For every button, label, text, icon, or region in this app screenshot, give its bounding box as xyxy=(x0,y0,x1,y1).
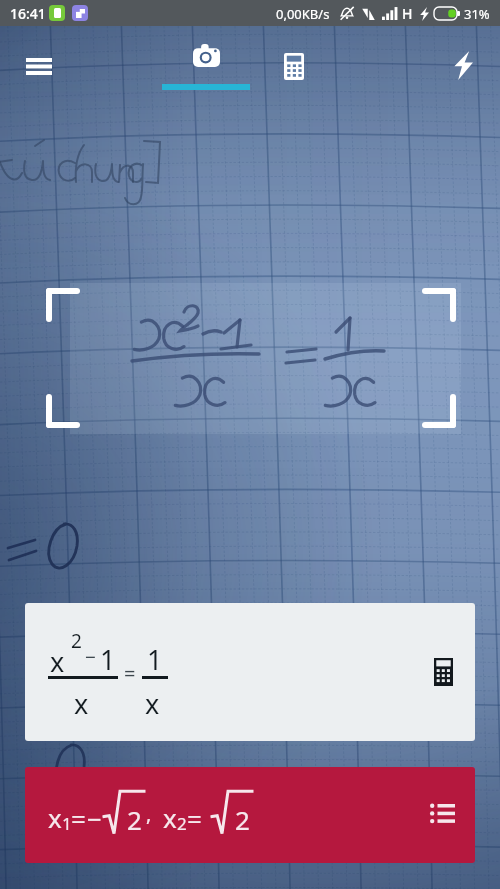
staticText: x xyxy=(163,800,177,835)
button[interactable]: x xyxy=(25,767,475,863)
staticText: x xyxy=(50,643,65,680)
staticText: 2 xyxy=(235,802,250,837)
staticText: 1 xyxy=(147,641,163,678)
button[interactable]: Flash xyxy=(438,40,488,90)
staticText: = xyxy=(187,801,202,836)
staticText: 0,00KB/s xyxy=(276,5,330,23)
staticText: = xyxy=(71,801,86,836)
button[interactable]: x xyxy=(25,603,475,741)
button[interactable]: Open calculator xyxy=(421,650,465,694)
button[interactable]: Show solving steps xyxy=(420,793,464,837)
button[interactable]: Camera xyxy=(162,40,250,106)
staticText: 2 xyxy=(177,812,187,835)
button[interactable]: Calculator xyxy=(268,40,320,92)
staticText: 2 xyxy=(71,628,82,654)
staticText: x xyxy=(74,685,89,722)
staticText: x xyxy=(48,800,62,835)
button[interactable]: Menu xyxy=(13,40,65,92)
staticText: − xyxy=(87,801,102,836)
staticText: 1 xyxy=(100,641,116,678)
staticText: x xyxy=(145,685,160,722)
staticText: 1 xyxy=(62,812,72,835)
staticText: − xyxy=(85,644,96,670)
staticText: = xyxy=(124,660,136,687)
staticText: 16:41 xyxy=(10,4,46,23)
staticText: H xyxy=(402,4,413,23)
staticText: 2 xyxy=(127,802,142,837)
staticText: , xyxy=(146,800,152,827)
staticText: 31% xyxy=(464,5,490,23)
